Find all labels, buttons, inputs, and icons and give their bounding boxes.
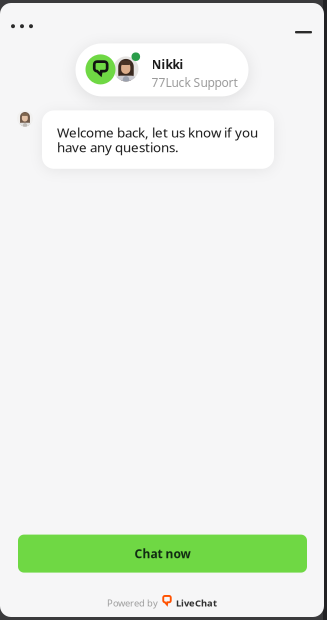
button[interactable]: Chat now	[18, 535, 307, 573]
button[interactable]: More options	[0, 13, 47, 39]
staticText: 77Luck Support	[151, 74, 237, 90]
staticText: Welcome back, let us know if you have an…	[57, 123, 258, 156]
button[interactable]: Minimize	[281, 12, 324, 40]
staticText: Nikki	[151, 56, 183, 72]
staticText: Chat now	[134, 546, 190, 561]
staticText: LiveChat	[176, 597, 217, 609]
staticText: Powered by	[107, 597, 158, 609]
